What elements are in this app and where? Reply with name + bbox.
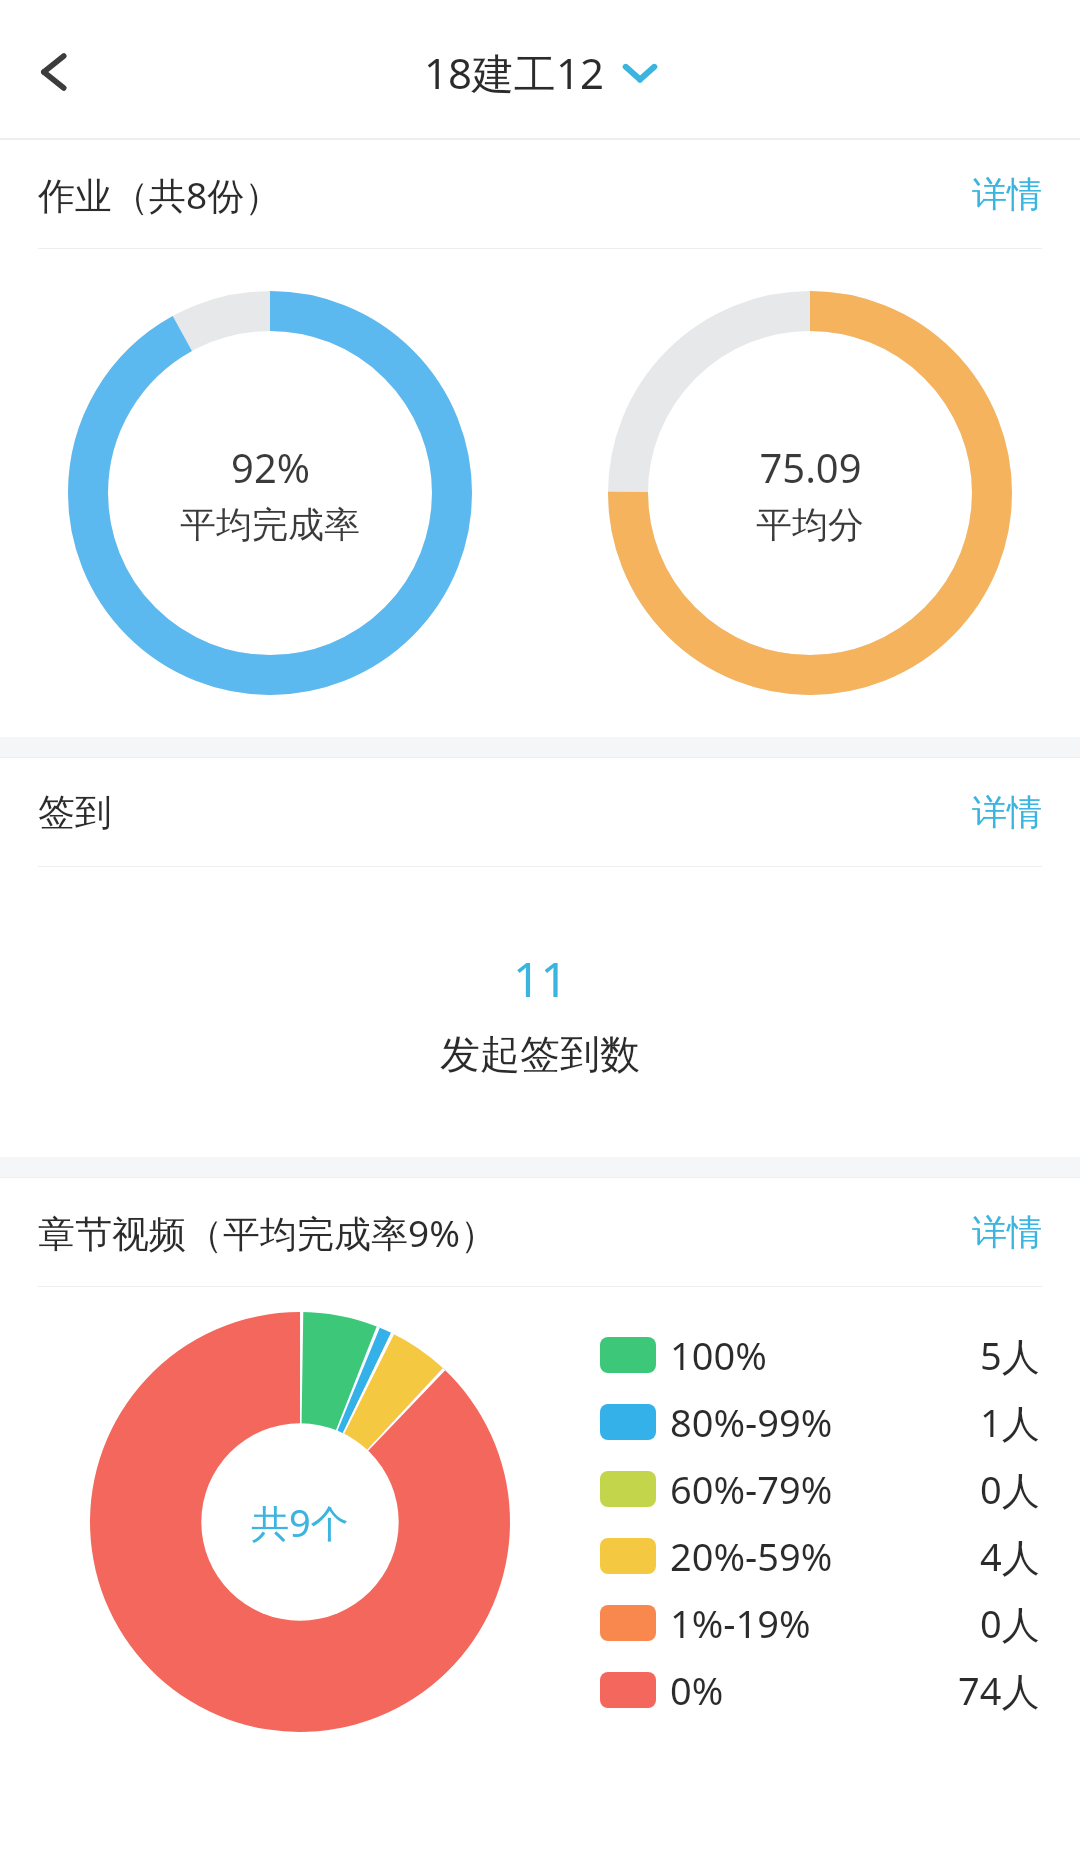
staticText: 平均分	[756, 502, 864, 547]
button[interactable]: 详情	[934, 776, 1080, 848]
staticText: 发起签到数	[440, 1029, 640, 1079]
staticText: 签到	[38, 789, 112, 836]
staticText: 20%-59%	[670, 1530, 833, 1582]
staticText: 75.09	[759, 440, 862, 494]
staticText: 92%	[231, 440, 310, 494]
staticText: 4人	[980, 1530, 1040, 1582]
button[interactable]: 20%-59%	[600, 1522, 1040, 1589]
staticText: 100%	[670, 1329, 767, 1381]
staticText: 5人	[980, 1329, 1040, 1381]
staticText: 18建工12	[424, 44, 605, 101]
button[interactable]: 详情	[934, 158, 1080, 230]
staticText: 0人	[980, 1597, 1040, 1649]
staticText: 74人	[958, 1664, 1040, 1716]
staticText: 0%	[670, 1664, 724, 1716]
staticText: 1%-19%	[670, 1597, 811, 1649]
staticText: 0人	[980, 1463, 1040, 1515]
staticText: 详情	[972, 1210, 1042, 1254]
staticText: 详情	[972, 172, 1042, 216]
staticText: 60%-79%	[670, 1463, 833, 1515]
staticText: 11	[513, 946, 568, 1011]
staticText: 共9个	[251, 1496, 349, 1548]
button[interactable]: 详情	[934, 1196, 1080, 1268]
button[interactable]: Back	[0, 17, 110, 127]
staticText: 章节视频（平均完成率9%）	[38, 1207, 497, 1258]
button[interactable]: 100%	[600, 1321, 1040, 1388]
button[interactable]: 18建工12	[424, 44, 657, 101]
button[interactable]: 1%-19%	[600, 1589, 1040, 1656]
staticText: 作业（共8份）	[38, 169, 282, 220]
staticText: 平均完成率	[180, 502, 360, 547]
staticText: 80%-99%	[670, 1396, 833, 1448]
button[interactable]: 60%-79%	[600, 1455, 1040, 1522]
staticText: 详情	[972, 790, 1042, 834]
staticText: 1人	[980, 1396, 1040, 1448]
button[interactable]: 0%	[600, 1656, 1040, 1723]
button[interactable]: 80%-99%	[600, 1388, 1040, 1455]
